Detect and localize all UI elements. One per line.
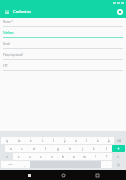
staticText: 0 xyxy=(108,137,110,140)
button[interactable]: Home xyxy=(58,170,68,180)
staticText: u xyxy=(75,139,77,143)
staticText: j xyxy=(82,147,83,151)
staticText: . xyxy=(106,163,107,167)
button[interactable]: 3 xyxy=(25,137,37,144)
button[interactable]: Placa (opcional) xyxy=(0,51,126,62)
staticText: w xyxy=(18,139,21,143)
staticText: 9 xyxy=(97,137,99,140)
staticText: CPF xyxy=(3,64,8,68)
button[interactable]: Back xyxy=(24,170,34,180)
button[interactable]: 1 xyxy=(1,137,13,144)
staticText: 3 xyxy=(30,137,32,140)
button[interactable]: a xyxy=(5,145,16,152)
button[interactable]: 5 xyxy=(48,137,59,144)
staticText: e xyxy=(30,139,32,143)
button[interactable]: l xyxy=(100,145,112,152)
staticText: ?123 xyxy=(8,163,13,166)
button[interactable]: Shift xyxy=(1,153,13,160)
staticText: , xyxy=(24,163,25,167)
staticText: c xyxy=(40,155,42,159)
button[interactable]: Navigate up xyxy=(2,7,11,16)
staticText: q xyxy=(6,139,8,143)
button[interactable]: Shift right xyxy=(112,153,125,160)
button[interactable]: ! xyxy=(90,153,101,160)
button[interactable]: ? xyxy=(101,153,112,160)
staticText: d xyxy=(33,147,35,151)
staticText: 1 xyxy=(6,137,8,140)
staticText: o xyxy=(97,139,99,143)
button[interactable]: c xyxy=(35,153,46,160)
staticText: ⇧ xyxy=(6,155,9,158)
staticText: ⇧ xyxy=(117,155,120,158)
button[interactable]: CPF xyxy=(0,62,126,73)
staticText: Placa (opcional) xyxy=(3,53,23,57)
button[interactable]: Email xyxy=(0,40,126,51)
button[interactable]: x xyxy=(24,153,35,160)
staticText: y xyxy=(64,139,66,143)
button[interactable]: j xyxy=(76,145,88,152)
button[interactable]: v xyxy=(46,153,57,160)
staticText: 6 xyxy=(64,137,66,140)
button[interactable]: m xyxy=(79,153,90,160)
staticText: 7 xyxy=(75,137,77,140)
button[interactable]: 4 xyxy=(37,137,48,144)
staticText: a xyxy=(10,147,12,151)
button[interactable]: z xyxy=(13,153,24,160)
staticText: v xyxy=(51,155,53,159)
staticText: g xyxy=(57,147,59,151)
button[interactable]: k xyxy=(88,145,100,152)
staticText: b xyxy=(62,155,64,159)
staticText: Nome * xyxy=(3,20,13,24)
button[interactable]: Telefone xyxy=(0,29,126,40)
button[interactable]: 6 xyxy=(59,137,70,144)
staticText: k xyxy=(93,147,95,151)
staticText: i xyxy=(86,139,87,143)
staticText: 5 xyxy=(53,137,55,140)
staticText: s xyxy=(21,147,23,151)
staticText: Email xyxy=(3,42,10,46)
staticText: h xyxy=(69,147,71,151)
button[interactable]: b xyxy=(57,153,68,160)
staticText: ? xyxy=(106,155,108,159)
button[interactable]: 7 xyxy=(70,137,81,144)
staticText: Telefone xyxy=(3,31,14,35)
button[interactable]: h xyxy=(64,145,76,152)
button[interactable]: 9 xyxy=(92,137,103,144)
button[interactable]: Recents xyxy=(92,170,102,180)
staticText: m xyxy=(83,155,86,159)
button[interactable]: Emoji xyxy=(112,161,125,168)
staticText: 2 xyxy=(18,137,20,140)
staticText: l xyxy=(106,147,107,151)
button[interactable]: 8 xyxy=(81,137,92,144)
button[interactable]: Backspace xyxy=(114,137,125,144)
button[interactable]: g xyxy=(52,145,64,152)
button[interactable]: f xyxy=(40,145,52,152)
staticText: z xyxy=(18,155,20,159)
button[interactable]: Nome * xyxy=(0,18,126,29)
staticText: r xyxy=(42,139,44,143)
button[interactable]: Save xyxy=(115,7,124,16)
button[interactable]: 2 xyxy=(13,137,25,144)
button[interactable]: n xyxy=(68,153,79,160)
staticText: f xyxy=(45,147,47,151)
button[interactable]: 0 xyxy=(103,137,114,144)
staticText: n xyxy=(73,155,75,159)
button[interactable]: Symbols xyxy=(1,161,19,168)
staticText: 8 xyxy=(86,137,88,140)
button[interactable]: s xyxy=(16,145,28,152)
staticText: t xyxy=(53,139,55,143)
button[interactable]: d xyxy=(28,145,40,152)
staticText: 4 xyxy=(42,137,44,140)
button[interactable]: , xyxy=(19,161,30,168)
staticText: p xyxy=(108,139,110,143)
staticText: x xyxy=(29,155,31,159)
staticText: ⌫ xyxy=(117,139,122,142)
staticText: ☺ xyxy=(117,163,121,166)
staticText: ! xyxy=(95,155,96,159)
staticText: Cadastro xyxy=(13,9,31,15)
button[interactable]: Enter xyxy=(112,145,125,152)
